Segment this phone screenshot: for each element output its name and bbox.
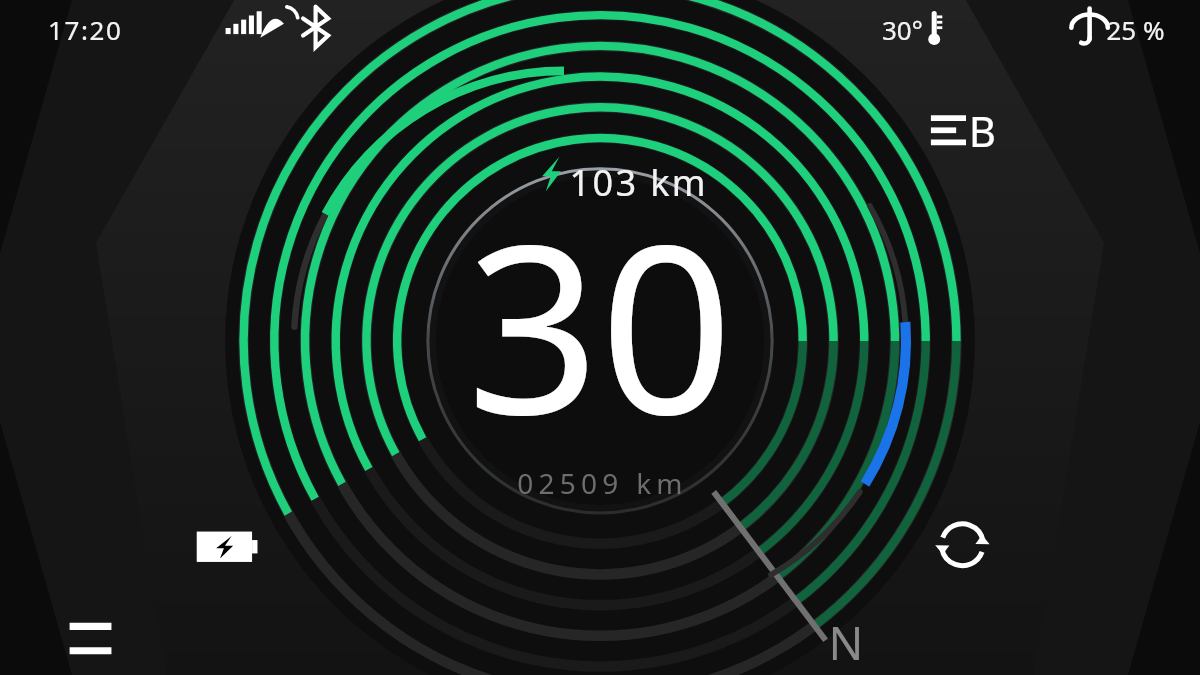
button[interactable]: Menu xyxy=(0,601,120,675)
